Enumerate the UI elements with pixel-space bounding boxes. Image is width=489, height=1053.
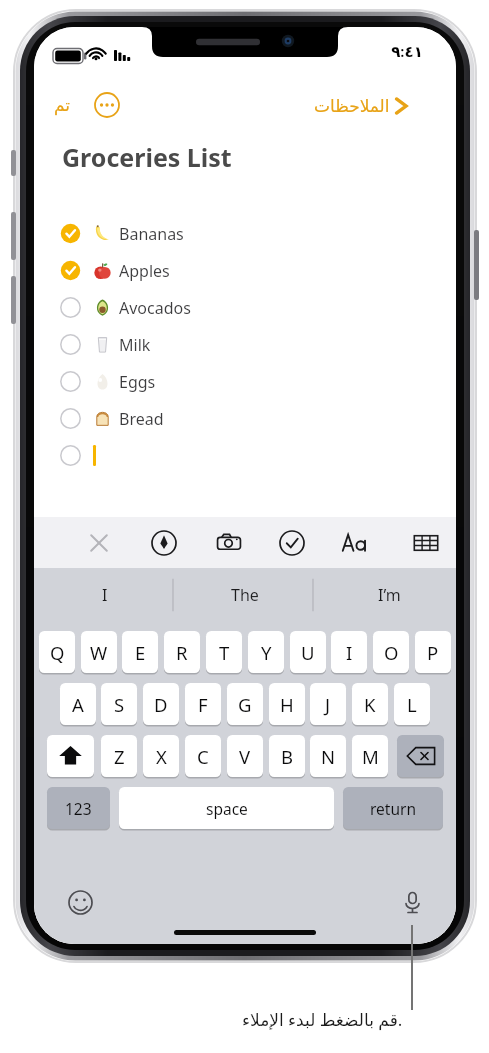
- button[interactable]: The: [187, 568, 303, 622]
- button[interactable]: [415, 631, 451, 673]
- button[interactable]: [331, 631, 367, 673]
- button[interactable]: Avocados: [34, 289, 456, 326]
- button[interactable]: Emoji: [60, 882, 100, 922]
- staticText: I: [346, 640, 353, 665]
- button[interactable]: [47, 787, 110, 829]
- button[interactable]: [101, 735, 137, 777]
- button[interactable]: I: [47, 568, 163, 622]
- staticText: X: [156, 744, 167, 769]
- button[interactable]: [143, 683, 179, 725]
- button[interactable]: [310, 683, 346, 725]
- staticText: K: [364, 692, 376, 717]
- button[interactable]: [269, 735, 305, 777]
- button[interactable]: Camera: [205, 517, 253, 568]
- button[interactable]: Text format: [331, 517, 379, 568]
- button[interactable]: Eggs: [34, 363, 456, 400]
- button[interactable]: Milk: [34, 326, 456, 363]
- button[interactable]: Dictation: [392, 882, 432, 922]
- button[interactable]: More options: [90, 88, 124, 122]
- staticText: G: [238, 692, 252, 717]
- staticText: O: [384, 640, 399, 665]
- button[interactable]: Shift: [47, 735, 94, 777]
- button[interactable]: [352, 683, 388, 725]
- button[interactable]: Apples: [34, 252, 456, 289]
- button[interactable]: Bananas: [34, 215, 456, 252]
- button[interactable]: Checklist: [268, 517, 316, 568]
- button[interactable]: [269, 683, 305, 725]
- staticText: Apples: [119, 260, 170, 282]
- button[interactable]: [227, 683, 263, 725]
- button[interactable]: الملاحظات: [310, 89, 412, 123]
- button[interactable]: [310, 735, 346, 777]
- button[interactable]: [352, 735, 388, 777]
- staticText: Groceries List: [62, 140, 232, 174]
- button[interactable]: [290, 631, 326, 673]
- staticText: F: [198, 692, 208, 717]
- button[interactable]: Table: [402, 517, 450, 568]
- staticText: قم بالضغط لبدء الإملاء.: [242, 1008, 403, 1031]
- staticText: M: [362, 744, 379, 769]
- button[interactable]: [39, 631, 75, 673]
- staticText: U: [301, 640, 315, 665]
- staticText: space: [206, 798, 248, 819]
- staticText: The: [231, 584, 259, 606]
- button[interactable]: تم: [48, 89, 77, 121]
- button[interactable]: Delete: [397, 735, 444, 777]
- button[interactable]: [343, 787, 443, 829]
- staticText: Bananas: [119, 223, 184, 245]
- button[interactable]: [185, 683, 221, 725]
- staticText: J: [325, 692, 331, 717]
- button[interactable]: [248, 631, 284, 673]
- staticText: C: [197, 744, 209, 769]
- staticText: P: [427, 640, 439, 665]
- button[interactable]: [143, 735, 179, 777]
- staticText: L: [407, 692, 417, 717]
- button[interactable]: [394, 683, 430, 725]
- staticText: الملاحظات: [314, 96, 390, 116]
- button[interactable]: Markup: [140, 517, 188, 568]
- staticText: W: [90, 640, 108, 665]
- button[interactable]: Close: [75, 517, 123, 568]
- button[interactable]: [164, 631, 200, 673]
- button[interactable]: [185, 735, 221, 777]
- staticText: B: [281, 744, 294, 769]
- button[interactable]: I’m: [331, 568, 447, 622]
- button[interactable]: [122, 631, 158, 673]
- staticText: ٩:٤١: [374, 41, 440, 61]
- staticText: Z: [114, 744, 125, 769]
- staticText: Milk: [119, 334, 151, 356]
- staticText: Q: [50, 640, 65, 665]
- button[interactable]: [60, 683, 96, 725]
- button[interactable]: [34, 437, 456, 474]
- button[interactable]: [206, 631, 242, 673]
- button[interactable]: [119, 787, 334, 829]
- staticText: 123: [65, 798, 92, 819]
- staticText: I’m: [378, 584, 401, 606]
- staticText: T: [219, 640, 230, 665]
- button[interactable]: [81, 631, 117, 673]
- staticText: I: [102, 584, 108, 606]
- staticText: N: [321, 744, 336, 769]
- button[interactable]: [373, 631, 409, 673]
- staticText: return: [370, 798, 416, 819]
- staticText: A: [72, 692, 84, 717]
- staticText: V: [239, 744, 251, 769]
- button[interactable]: [101, 683, 137, 725]
- staticText: تم: [54, 95, 71, 115]
- staticText: E: [135, 640, 146, 665]
- button[interactable]: [227, 735, 263, 777]
- staticText: Y: [261, 640, 272, 665]
- staticText: R: [176, 640, 188, 665]
- staticText: Avocados: [119, 297, 191, 319]
- staticText: Eggs: [119, 371, 156, 393]
- staticText: H: [280, 692, 294, 717]
- staticText: S: [114, 692, 125, 717]
- button[interactable]: Bread: [34, 400, 456, 437]
- staticText: Bread: [119, 408, 164, 430]
- staticText: D: [154, 692, 168, 717]
